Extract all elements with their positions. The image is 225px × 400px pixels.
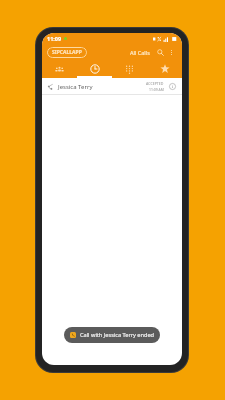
button[interactable]: Recents — [77, 60, 112, 78]
button[interactable]: All Calls — [128, 49, 152, 56]
staticText: SIPCALLAPP — [52, 49, 82, 56]
button[interactable]: SIPCALLAPP — [47, 47, 87, 58]
staticText: All Calls — [130, 49, 150, 56]
button[interactable]: Jessica Terry — [42, 78, 182, 95]
button[interactable]: Dialpad — [112, 60, 147, 78]
button[interactable]: Favorites — [147, 60, 182, 78]
button[interactable]: More options — [166, 47, 177, 58]
staticText: 11:09 — [47, 35, 62, 42]
button[interactable]: Call details — [168, 82, 177, 91]
button[interactable]: Contacts — [42, 60, 77, 78]
staticText: ACCEPTED — [146, 81, 164, 86]
staticText: 11:09 AM — [149, 87, 164, 92]
staticText: Jessica Terry — [58, 83, 93, 91]
staticText: Call with Jessica Terry ended — [80, 331, 154, 339]
button[interactable]: Search — [155, 47, 166, 58]
